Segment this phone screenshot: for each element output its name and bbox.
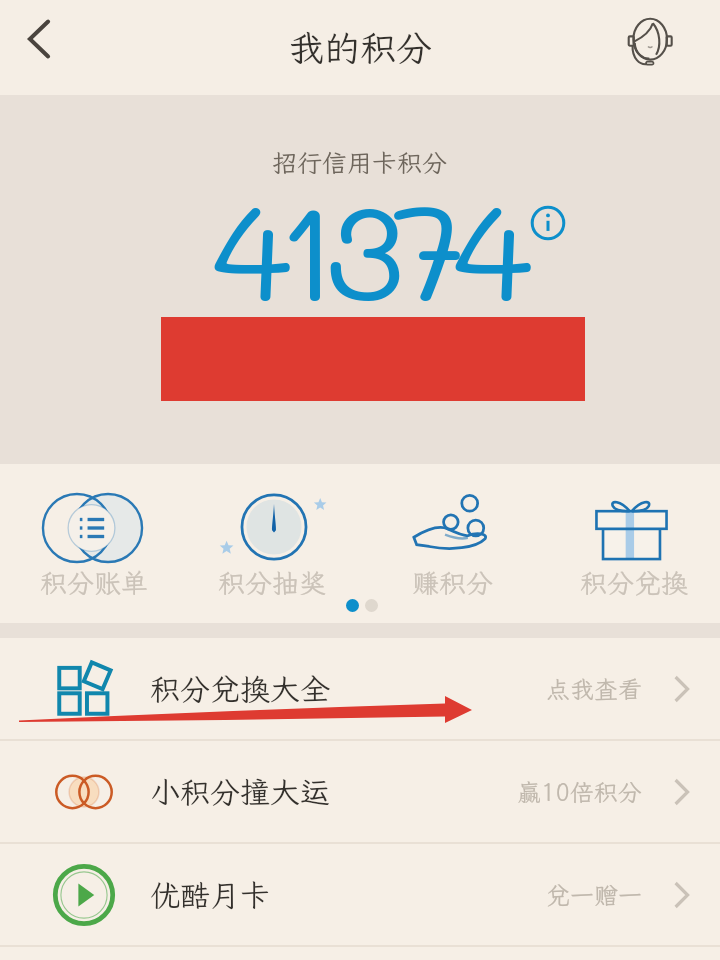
staticText: 优酷月卡 [150,875,270,915]
button[interactable]: Back [0,0,78,78]
staticText: 积分兑换 [580,565,688,601]
button[interactable]: 小积分撞大运 [0,741,720,842]
staticText: 积分抽奖 [218,565,326,601]
button[interactable]: 赚积分 [364,464,540,601]
staticText: 41374 [212,159,520,335]
staticText: 招行信用卡积分 [272,146,448,179]
staticText: 点我查看 [546,673,642,705]
button[interactable]: 积分兑换大全 [0,638,720,739]
staticText: 小积分撞大运 [150,772,330,812]
staticText: 赢10倍积分 [517,776,642,808]
button[interactable]: 积分抽奖 [184,464,360,601]
staticText: 我的积分 [288,24,433,71]
staticText: 兑一赠一 [546,879,642,911]
button[interactable]: Points info [525,200,571,246]
staticText: 积分账单 [40,565,148,601]
staticText: 赚积分 [412,565,493,601]
button[interactable]: 积分账单 [6,464,182,601]
button[interactable]: Customer service [605,0,693,88]
button[interactable]: 积分兑换 [546,464,720,601]
button[interactable]: 优酷月卡 [0,844,720,945]
staticText: 积分兑换大全 [150,669,330,709]
